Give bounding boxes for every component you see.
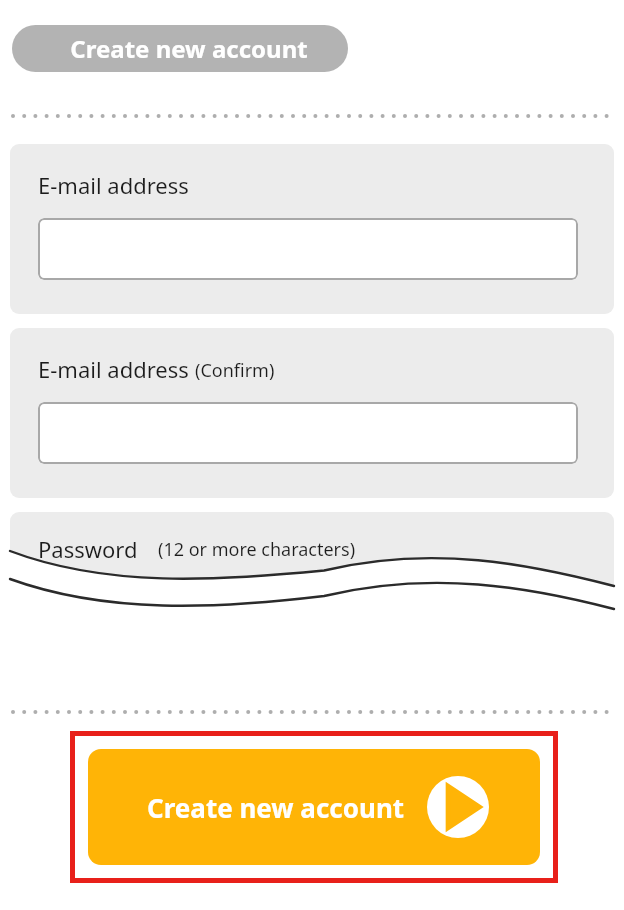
button[interactable]: Create new account <box>12 25 348 72</box>
staticText: Create new account <box>147 790 405 825</box>
staticText: E-mail address <box>38 354 189 384</box>
staticText: (12 or more characters) <box>158 537 356 562</box>
button[interactable]: Create new account <box>88 749 540 865</box>
staticText: Create new account <box>70 32 308 65</box>
staticText: E-mail address <box>38 170 189 200</box>
staticText: Password <box>38 534 144 564</box>
button[interactable] <box>38 402 578 464</box>
staticText: (Confirm) <box>195 358 275 383</box>
button[interactable] <box>38 218 578 280</box>
other: Proceed <box>427 776 489 838</box>
